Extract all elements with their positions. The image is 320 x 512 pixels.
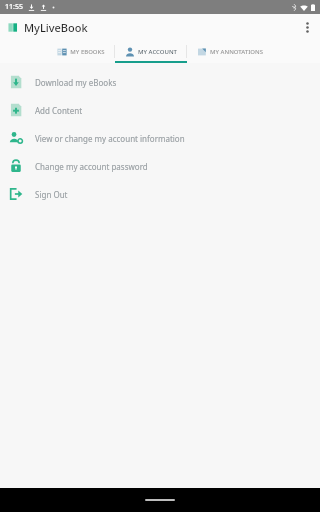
button[interactable]: View or change my account information (0, 124, 320, 152)
staticText: Download my eBooks (35, 77, 117, 88)
staticText: MyLiveBook (24, 20, 88, 35)
button[interactable]: More options (294, 14, 320, 40)
button[interactable]: Change my account password (0, 152, 320, 180)
staticText: Change my account password (35, 161, 148, 172)
button[interactable]: Download my eBooks (0, 68, 320, 96)
staticText: 11:55 (5, 2, 23, 12)
staticText: Add Content (35, 105, 83, 116)
button[interactable]: Sign Out (0, 180, 320, 208)
staticText: MY EBOOKS (70, 48, 105, 56)
button[interactable]: Add Content (0, 96, 320, 124)
button[interactable]: MY ANNOTATIONS (187, 40, 273, 63)
staticText: View or change my account information (35, 133, 185, 144)
staticText: MY ANNOTATIONS (210, 48, 263, 56)
button[interactable]: MY EBOOKS (47, 40, 115, 63)
staticText: Sign Out (35, 189, 68, 200)
button[interactable]: MY ACCOUNT (115, 40, 187, 63)
staticText: MY ACCOUNT (138, 48, 177, 56)
